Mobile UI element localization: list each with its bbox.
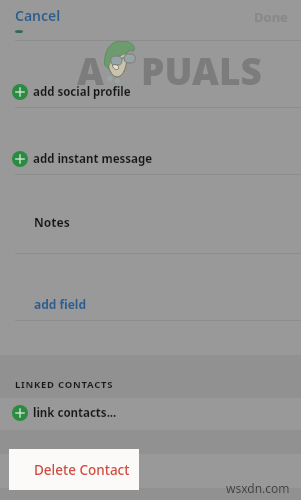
button[interactable]: add instant message <box>0 144 301 174</box>
button[interactable]: Done <box>247 5 295 29</box>
button[interactable]: Cancel <box>8 3 68 28</box>
button[interactable]: add social profile <box>0 77 301 107</box>
staticText: add social profile <box>33 84 131 100</box>
button[interactable] <box>0 454 301 488</box>
staticText: Delete Contact <box>34 461 130 479</box>
button[interactable]: add field <box>0 289 301 319</box>
staticText: wsxdn.com <box>226 480 290 496</box>
staticText: Done <box>254 8 288 26</box>
staticText: Notes <box>34 214 70 230</box>
staticText: add instant message <box>33 151 153 167</box>
staticText: Cancel <box>15 6 61 25</box>
button[interactable]: LINKED CONTACTS <box>15 378 114 391</box>
button[interactable]: link contacts... <box>0 398 301 428</box>
staticText: A <box>77 45 104 95</box>
staticText: LINKED CONTACTS <box>15 378 114 391</box>
staticText: add field <box>34 296 87 312</box>
staticText: PUALS <box>141 45 262 95</box>
button[interactable]: Notes <box>0 207 301 237</box>
staticText: link contacts... <box>33 405 117 421</box>
